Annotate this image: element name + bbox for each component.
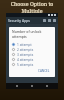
button[interactable]: CANCEL — [36, 68, 52, 74]
staticText: Security Apps — [8, 18, 30, 23]
button[interactable]: 5 attempts — [12, 62, 52, 67]
staticText: 2 attempts — [17, 48, 34, 52]
staticText: Number of unlock attempts — [12, 29, 52, 39]
button[interactable]: 4 attempts — [12, 57, 52, 62]
button[interactable]: Toolbar action — [53, 19, 56, 22]
staticText: Choose Option to Multiple — [0, 0, 64, 13]
staticText: CANCEL — [38, 69, 50, 73]
button[interactable]: Toolbar action — [43, 19, 46, 22]
button[interactable]: Home — [28, 83, 36, 89]
staticText: 3 attempts — [17, 53, 34, 57]
button[interactable]: 1 attempt — [12, 42, 52, 47]
staticText: 1 attempt — [17, 43, 32, 47]
button[interactable]: Toolbar action — [48, 19, 51, 22]
button[interactable]: Recents — [43, 83, 51, 89]
button[interactable]: 3 attempts — [12, 52, 52, 57]
button[interactable]: 2 attempts — [12, 47, 52, 52]
button[interactable]: Back — [13, 83, 21, 89]
staticText: 5 attempts — [17, 63, 34, 67]
staticText: 4 attempts — [17, 58, 34, 62]
